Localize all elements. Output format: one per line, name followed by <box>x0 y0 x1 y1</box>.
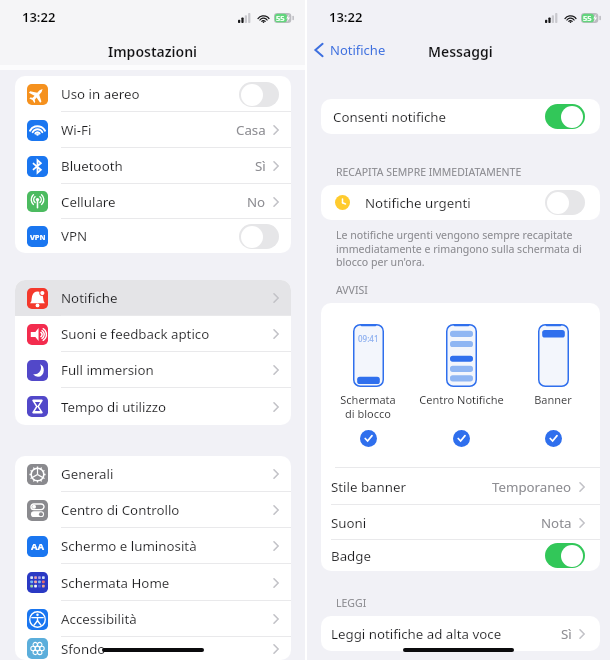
button[interactable]: Suoni <box>321 505 600 540</box>
button[interactable]: Indietro <box>310 38 390 62</box>
button[interactable]: Cellulare <box>15 184 291 219</box>
button[interactable]: Disattivato <box>239 82 279 107</box>
button[interactable]: Tempo di utilizzo <box>15 388 291 425</box>
button[interactable]: Disattivato <box>239 224 279 249</box>
button[interactable]: Schermata Home <box>15 564 291 601</box>
staticText: Consenti notifiche <box>333 108 447 126</box>
staticText: Messaggi <box>428 42 493 61</box>
button[interactable]: Full immersion <box>15 352 291 388</box>
staticText: Accessibilità <box>61 610 137 628</box>
button[interactable]: AA <box>15 528 291 564</box>
button[interactable]: Banner <box>507 324 599 447</box>
staticText: Nota <box>541 514 572 532</box>
staticText: Schermata di blocco <box>340 392 396 421</box>
button[interactable]: Attivato <box>545 104 585 129</box>
staticText: 55 <box>276 13 285 23</box>
staticText: Centro di Controllo <box>61 501 180 519</box>
staticText: Notifiche <box>61 289 118 307</box>
button[interactable]: Centro Notifiche <box>415 324 507 447</box>
button[interactable]: 09:41 <box>322 324 414 447</box>
staticText: Tempo di utilizzo <box>61 398 166 416</box>
button[interactable]: Uso in aereo <box>15 76 291 112</box>
button[interactable]: Notifiche urgenti <box>321 185 600 220</box>
button[interactable]: Sfondo <box>15 637 291 660</box>
staticText: Banner <box>534 392 572 407</box>
staticText: Suoni e feedback aptico <box>61 325 210 343</box>
staticText: Centro Notifiche <box>419 392 504 407</box>
staticText: Sfondo <box>61 640 106 658</box>
staticText: Wi-Fi <box>61 121 92 139</box>
button[interactable]: Badge <box>321 540 600 571</box>
button[interactable]: Leggi notifiche ad alta voce <box>321 616 600 651</box>
staticText: AA <box>31 540 45 553</box>
staticText: No <box>247 193 266 211</box>
button[interactable]: Stile banner <box>321 468 600 505</box>
staticText: Sì <box>561 625 572 643</box>
staticText: Suoni <box>331 514 367 532</box>
staticText: Notifiche urgenti <box>365 194 471 212</box>
staticText: Uso in aereo <box>61 85 140 103</box>
button[interactable]: Generali <box>15 456 291 492</box>
staticText: Temporaneo <box>492 478 572 496</box>
staticText: VPN <box>61 227 88 245</box>
staticText: AVVISI <box>336 283 368 297</box>
staticText: Sì <box>255 157 266 175</box>
staticText: Schermo e luminosità <box>61 537 197 555</box>
staticText: Schermata Home <box>61 574 170 592</box>
staticText: 13:22 <box>22 8 56 26</box>
button[interactable]: Suoni e feedback aptico <box>15 316 291 352</box>
button[interactable]: Bluetooth <box>15 148 291 184</box>
staticText: LEGGI <box>336 596 367 610</box>
staticText: Badge <box>331 547 371 565</box>
button[interactable]: Centro di Controllo <box>15 492 291 528</box>
staticText: Le notifiche urgenti vengono sempre reca… <box>336 228 582 269</box>
staticText: Impostazioni <box>108 42 198 61</box>
button[interactable]: Disattivato <box>545 190 585 215</box>
staticText: RECAPITA SEMPRE IMMEDIATAMENTE <box>336 165 522 179</box>
staticText: Generali <box>61 465 114 483</box>
staticText: 55 <box>583 13 592 23</box>
button[interactable]: VPN <box>15 219 291 253</box>
button[interactable]: Accessibilità <box>15 601 291 637</box>
staticText: 09:41 <box>358 333 379 344</box>
staticText: Notifiche <box>330 41 386 59</box>
staticText: 13:22 <box>329 8 363 26</box>
button[interactable]: Wi-Fi <box>15 112 291 148</box>
staticText: Bluetooth <box>61 157 123 175</box>
button[interactable]: Notifiche <box>15 280 291 316</box>
staticText: Casa <box>236 121 266 139</box>
staticText: Leggi notifiche ad alta voce <box>331 625 502 643</box>
button[interactable]: Consenti notifiche <box>321 99 600 134</box>
staticText: VPN <box>30 232 46 242</box>
staticText: Stile banner <box>331 478 406 496</box>
button[interactable]: Attivato <box>545 543 585 568</box>
staticText: Full immersion <box>61 361 154 379</box>
staticText: Cellulare <box>61 193 116 211</box>
